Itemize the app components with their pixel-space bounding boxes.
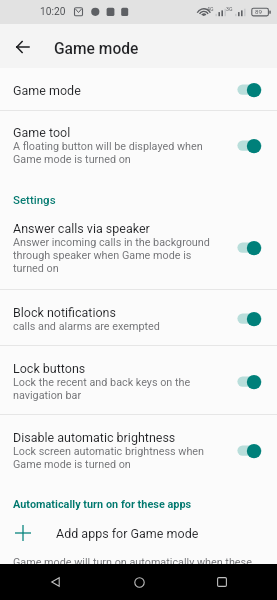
staticText: Answer incoming calls in the background … [13, 236, 210, 275]
staticText: Game mode [54, 40, 139, 58]
button[interactable]: Answer calls via speaker [0, 218, 277, 289]
staticText: Lock screen automatic brightness when Ga… [13, 445, 205, 471]
staticText: Game tool [13, 125, 71, 140]
staticText: 3G [226, 6, 233, 12]
button[interactable]: Recent apps [207, 567, 237, 597]
button[interactable]: Disable automatic brightness [0, 415, 277, 485]
staticText: Answer calls via speaker [13, 221, 150, 236]
staticText: Block notifications [13, 305, 116, 320]
staticText: 89 [255, 8, 262, 15]
button[interactable]: Game mode [0, 68, 277, 110]
button[interactable]: Add apps for Game mode [0, 523, 277, 551]
staticText: Lock buttons [13, 361, 86, 376]
staticText: 4G [207, 6, 214, 12]
staticText: 10:20 [40, 6, 66, 18]
button[interactable]: Game tool [0, 111, 277, 177]
staticText: Lock the recent and back keys on the nav… [13, 376, 191, 402]
button[interactable]: Back [1, 26, 43, 68]
staticText: Game mode will turn on automatically whe… [13, 556, 252, 564]
staticText: Game mode [13, 83, 81, 98]
staticText: calls and alarms are exempted [13, 320, 160, 333]
staticText: Add apps for Game mode [56, 526, 199, 541]
button[interactable]: Lock buttons [0, 346, 277, 414]
staticText: Settings [13, 193, 56, 206]
staticText: Disable automatic brightness [13, 430, 176, 445]
staticText: Automatically turn on for these apps [13, 498, 192, 511]
staticText: A floating button will be displayed when… [13, 140, 203, 166]
button[interactable]: Home [124, 567, 154, 597]
button[interactable]: Block notifications [0, 290, 277, 345]
button[interactable]: Back [40, 567, 70, 597]
